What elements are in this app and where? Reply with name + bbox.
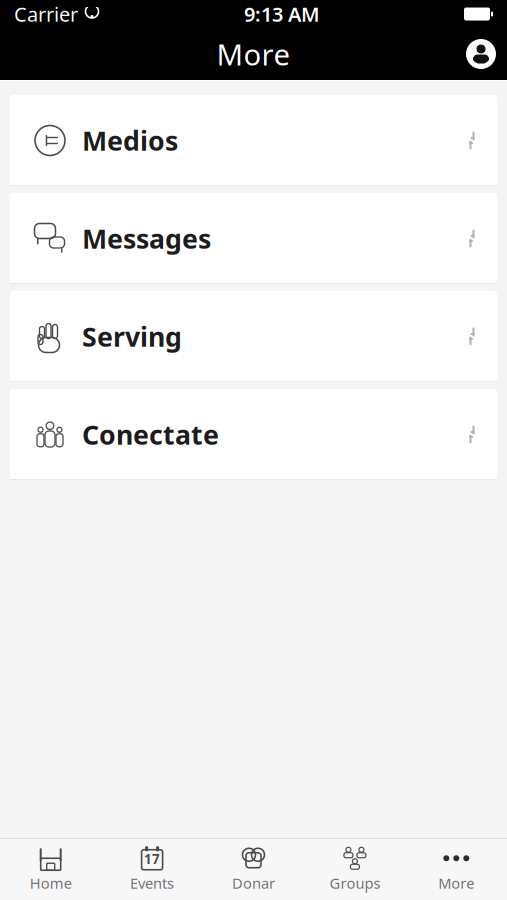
staticText: Events [130, 873, 174, 893]
button[interactable]: Donar [203, 840, 304, 898]
button[interactable]: Medios [0, 95, 507, 186]
staticText: Donar [232, 873, 275, 893]
staticText: More [438, 873, 474, 893]
staticText: 17 [144, 850, 160, 868]
staticText: More [216, 34, 290, 73]
button[interactable]: Home [0, 840, 101, 898]
button[interactable]: Groups [304, 840, 406, 898]
staticText: Messages [82, 221, 211, 256]
button[interactable]: 17 [101, 840, 203, 898]
button[interactable]: Profile [455, 32, 507, 76]
staticText: Conectate [82, 417, 219, 452]
staticText: Home [30, 873, 72, 893]
button[interactable]: More [406, 840, 507, 898]
staticText: Carrier [14, 1, 78, 27]
button[interactable]: Conectate [0, 389, 507, 480]
staticText: Groups [329, 873, 380, 893]
button[interactable]: Messages [0, 193, 507, 284]
staticText: Serving [82, 319, 182, 354]
button[interactable]: Serving [0, 291, 507, 382]
staticText: Medios [82, 123, 178, 158]
staticText: 9:13 AM [244, 1, 320, 27]
